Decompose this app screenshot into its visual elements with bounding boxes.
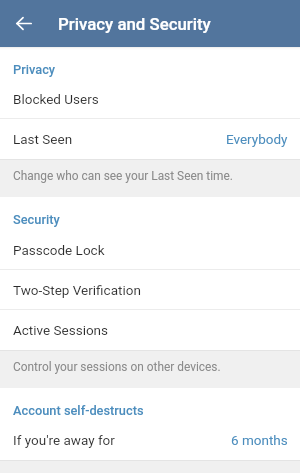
staticText: Everybody bbox=[226, 131, 288, 147]
staticText: Blocked Users bbox=[13, 91, 99, 107]
staticText: Change who can see your Last Seen time. bbox=[13, 169, 233, 183]
staticText: Two-Step Verification bbox=[13, 282, 141, 298]
staticText: Security bbox=[13, 212, 60, 227]
button[interactable]: If you're away for bbox=[0, 420, 300, 460]
staticText: Passcode Lock bbox=[13, 242, 105, 258]
staticText: Control your sessions on other devices. bbox=[13, 360, 221, 374]
button[interactable]: Back bbox=[5, 5, 42, 42]
staticText: 6 months bbox=[231, 432, 288, 448]
staticText: Active Sessions bbox=[13, 322, 109, 338]
staticText: Privacy and Security bbox=[58, 14, 211, 34]
staticText: Last Seen bbox=[13, 131, 73, 147]
button[interactable]: Last Seen bbox=[0, 119, 300, 159]
button[interactable]: Active Sessions bbox=[0, 310, 300, 350]
staticText: Account self-destructs bbox=[13, 403, 144, 418]
button[interactable]: Blocked Users bbox=[0, 78, 300, 119]
button[interactable]: Passcode Lock bbox=[0, 229, 300, 270]
staticText: Privacy bbox=[13, 62, 56, 77]
button[interactable]: Two-Step Verification bbox=[0, 270, 300, 310]
staticText: If you're away for bbox=[13, 432, 115, 448]
